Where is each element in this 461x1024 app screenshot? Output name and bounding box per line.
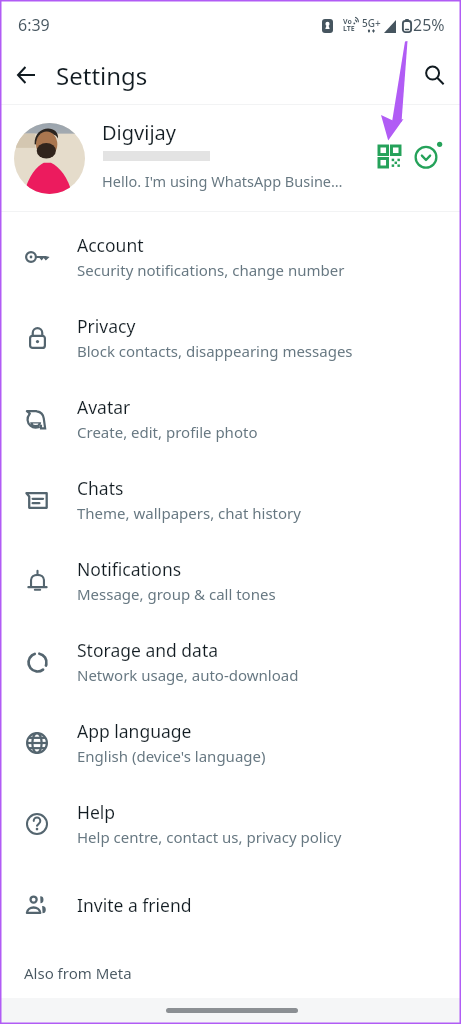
staticText: Chats (77, 476, 124, 500)
staticText: Help centre, contact us, privacy policy (77, 827, 342, 847)
staticText: Create, edit, profile photo (77, 422, 258, 442)
button[interactable]: Account (0, 216, 461, 297)
staticText: English (device's language) (77, 746, 266, 766)
staticText: LTE (343, 24, 355, 34)
button[interactable]: Chats (0, 459, 461, 540)
button[interactable]: Notifications (0, 540, 461, 621)
staticText: 25% (413, 14, 445, 36)
staticText: Hello. I'm using WhatsApp Busine… (102, 171, 343, 191)
button[interactable]: Back (6, 55, 46, 95)
button[interactable]: Digvijay (0, 104, 461, 211)
staticText: Also from Meta (24, 963, 132, 983)
button[interactable]: QR code (371, 138, 407, 174)
staticText: Account (77, 233, 144, 257)
staticText: Storage and data (77, 638, 219, 662)
staticText: Notifications (77, 557, 182, 581)
staticText: Avatar (77, 395, 131, 419)
button[interactable]: Invite a friend (0, 864, 461, 945)
staticText: App language (77, 719, 192, 743)
button[interactable]: Avatar (0, 378, 461, 459)
button[interactable]: App language (0, 702, 461, 783)
staticText: Vo (343, 17, 352, 27)
staticText: Invite a friend (77, 893, 192, 917)
staticText: Theme, wallpapers, chat history (77, 503, 301, 523)
staticText: 5G+ (362, 16, 381, 30)
staticText: Digvijay (102, 119, 176, 146)
staticText: Message, group & call tones (77, 584, 276, 604)
button[interactable]: Help (0, 783, 461, 864)
button[interactable]: Search (414, 55, 454, 95)
staticText: Security notifications, change number (77, 260, 345, 280)
staticText: 6:39 (18, 14, 50, 36)
staticText: Privacy (77, 314, 136, 338)
staticText: Settings (56, 59, 148, 92)
staticText: Help (77, 800, 116, 824)
button[interactable]: Privacy (0, 297, 461, 378)
staticText: Network usage, auto-download (77, 665, 299, 685)
button[interactable]: Status updates (410, 136, 448, 174)
staticText: Block contacts, disappearing messages (77, 341, 353, 361)
button[interactable]: Storage and data (0, 621, 461, 702)
